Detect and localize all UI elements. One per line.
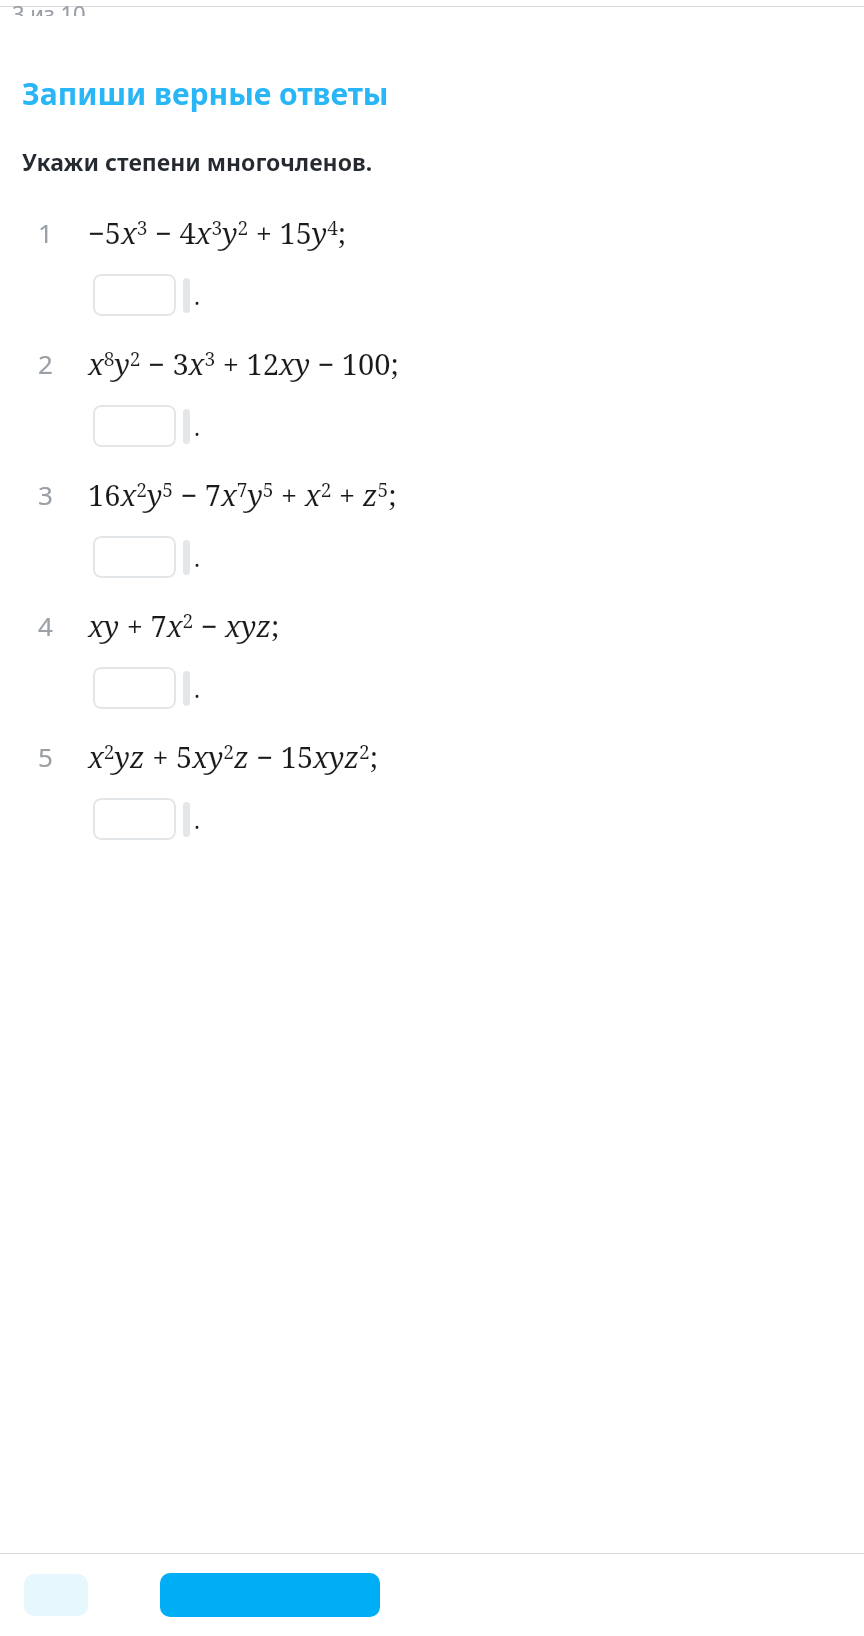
staticText: . xyxy=(194,672,200,705)
button[interactable] xyxy=(160,1573,380,1617)
staticText: 2 xyxy=(38,346,53,381)
staticText: . xyxy=(194,279,200,312)
button[interactable] xyxy=(93,536,176,578)
staticText: −5x3 − 4x3y2 + 15y4; xyxy=(88,213,347,252)
staticText: xy + 7x2 − xyz; xyxy=(88,606,280,645)
staticText: x2yz + 5xy2z − 15xyz2; xyxy=(88,737,379,776)
staticText: Укажи степени многочленов. xyxy=(22,146,373,177)
staticText: 3 xyxy=(38,477,53,512)
staticText: 1 xyxy=(38,215,53,250)
staticText: Запиши верные ответы xyxy=(22,73,389,114)
button[interactable]: Подсказка xyxy=(24,1574,88,1616)
button[interactable] xyxy=(93,274,176,316)
staticText: 16x2y5 − 7x7y5 + x2 + z5; xyxy=(88,475,397,514)
staticText: x8y2 − 3x3 + 12xy − 100; xyxy=(88,344,399,383)
button[interactable] xyxy=(93,667,176,709)
staticText: 3 из 10 xyxy=(12,0,86,16)
button[interactable] xyxy=(93,405,176,447)
staticText: 4 xyxy=(38,608,53,643)
staticText: . xyxy=(194,541,200,574)
button[interactable] xyxy=(93,798,176,840)
staticText: . xyxy=(194,410,200,443)
staticText: 5 xyxy=(38,739,53,774)
staticText: . xyxy=(194,803,200,836)
